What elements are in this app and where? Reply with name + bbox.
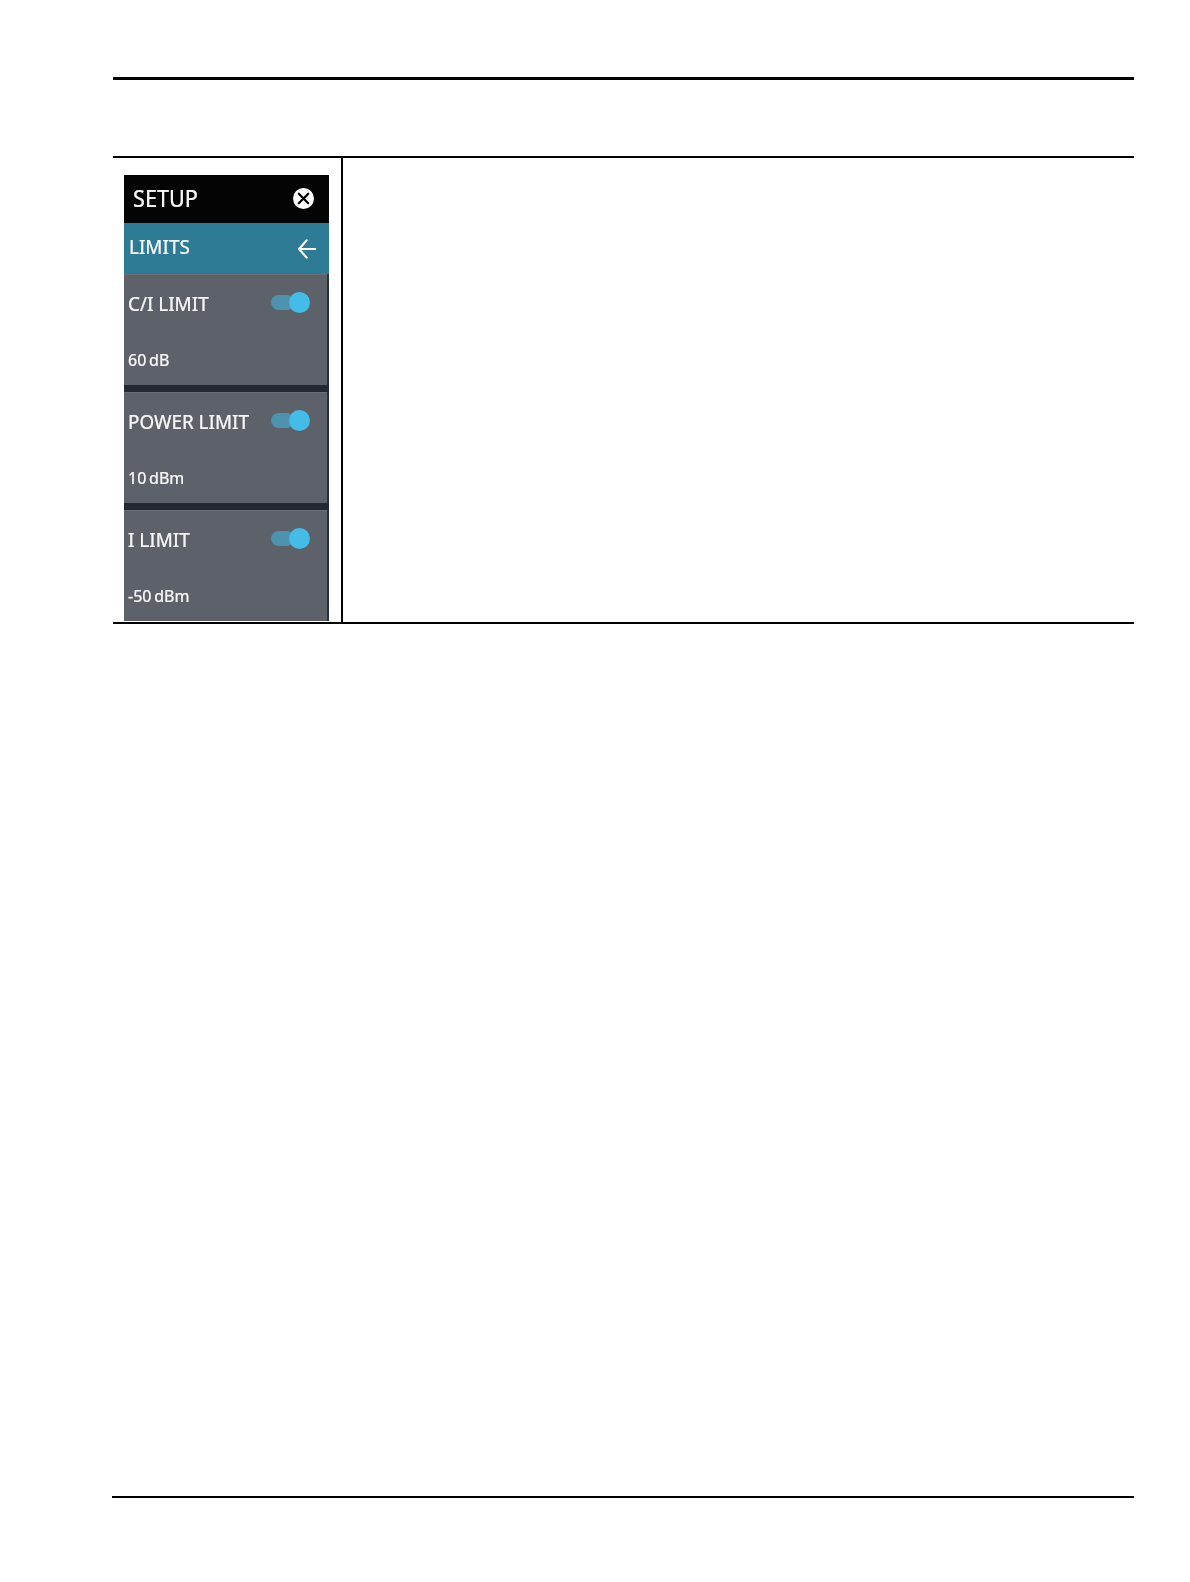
button[interactable]: I LIMIT xyxy=(124,510,329,621)
staticText: LIMITS xyxy=(129,233,190,260)
button[interactable]: SETUP xyxy=(124,175,329,223)
staticText: 10 dBm xyxy=(128,466,185,489)
button[interactable]: POWER LIMIT xyxy=(124,392,329,503)
button[interactable]: Back xyxy=(298,240,316,258)
staticText: C/I LIMIT xyxy=(128,290,209,317)
staticText: -50 dBm xyxy=(128,584,190,607)
button[interactable]: C/I LIMIT xyxy=(124,274,329,385)
button[interactable]: I LIMIT switch, on xyxy=(271,528,310,549)
button[interactable]: C/I LIMIT switch, on xyxy=(271,292,310,313)
button[interactable]: Close setup xyxy=(293,188,314,209)
staticText: 60 dB xyxy=(128,348,170,371)
staticText: POWER LIMIT xyxy=(128,408,249,435)
staticText: SETUP xyxy=(133,182,198,213)
button[interactable]: POWER LIMIT switch, on xyxy=(271,410,310,431)
button[interactable]: LIMITS xyxy=(124,223,329,274)
staticText: I LIMIT xyxy=(128,526,190,553)
